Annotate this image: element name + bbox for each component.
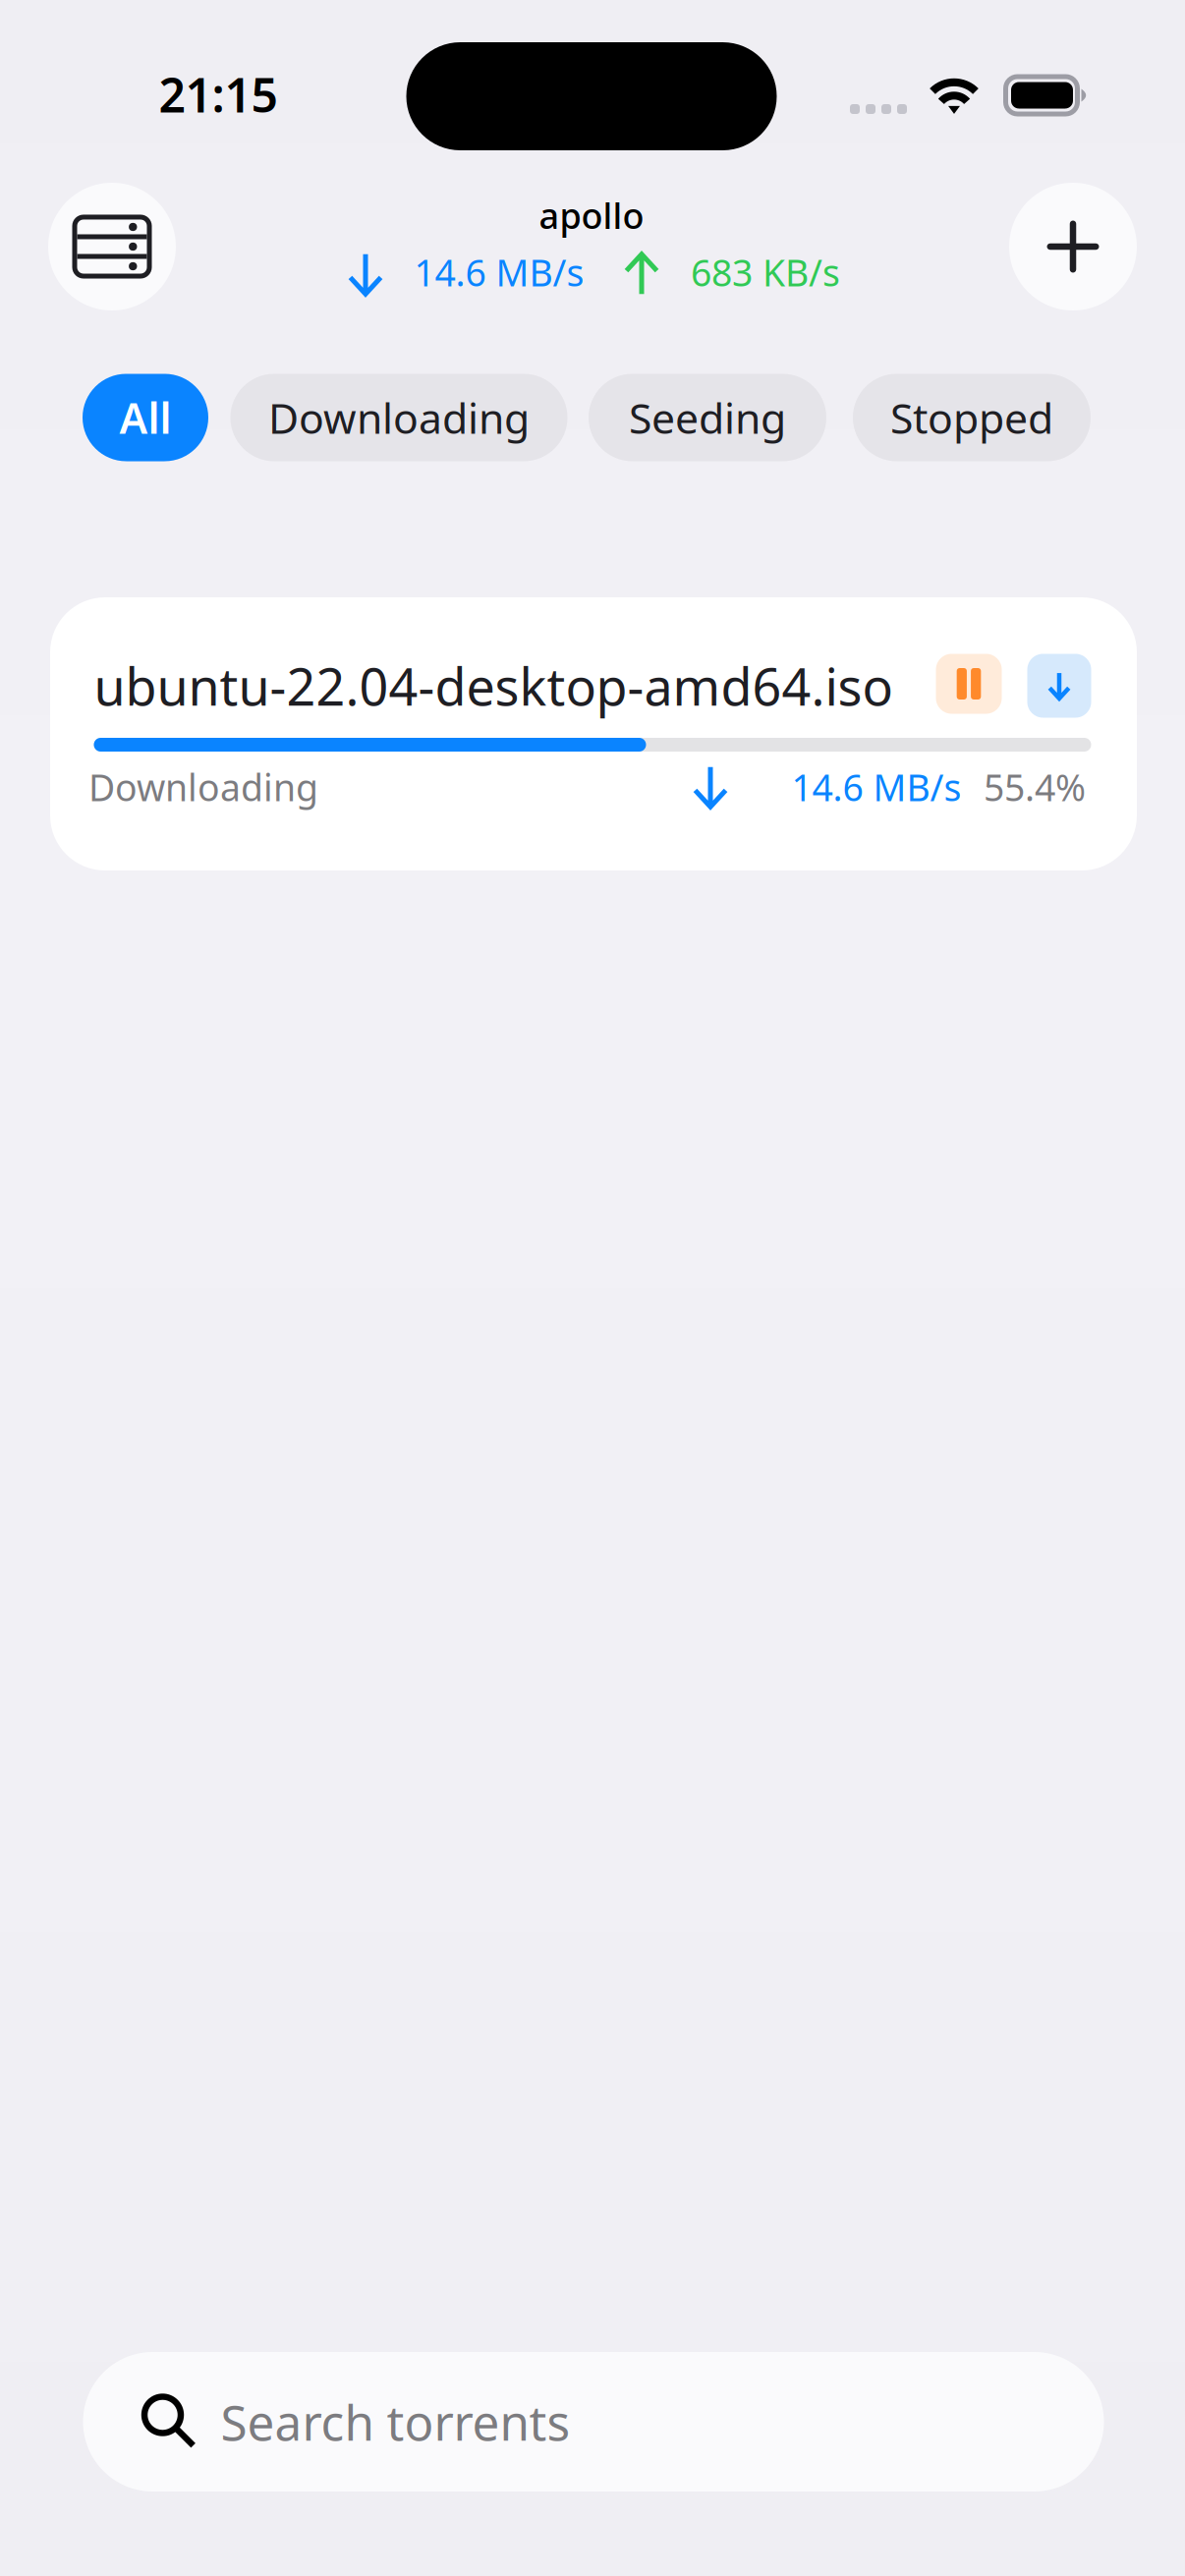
staticText: Search torrents: [221, 2390, 570, 2454]
button[interactable]: Download: [1027, 654, 1091, 718]
button[interactable]: Pause: [936, 654, 1002, 714]
button[interactable]: Add torrent: [1009, 183, 1137, 310]
staticText: Seeding: [629, 390, 786, 445]
button[interactable]: All: [83, 374, 208, 461]
staticText: All: [119, 390, 171, 445]
button[interactable]: Search torrents: [83, 2352, 1104, 2492]
button[interactable]: Stopped: [853, 374, 1091, 461]
staticText: 683 KB/s: [691, 248, 840, 297]
staticText: Downloading: [268, 390, 530, 445]
staticText: 14.6 MB/s: [791, 763, 961, 811]
button[interactable]: Downloading: [230, 374, 567, 461]
staticText: 55.4%: [984, 763, 1086, 811]
staticText: 14.6 MB/s: [414, 248, 584, 297]
staticText: apollo: [539, 192, 644, 239]
staticText: Stopped: [890, 390, 1053, 445]
button[interactable]: Server: [48, 183, 176, 310]
button[interactable]: Seeding: [589, 374, 826, 461]
staticText: Downloading: [88, 763, 318, 811]
staticText: 21:15: [159, 63, 278, 126]
staticText: ubuntu-22.04-desktop-amd64.iso: [94, 652, 893, 720]
